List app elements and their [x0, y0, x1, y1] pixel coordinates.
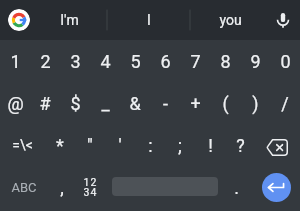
staticText: ABC: [11, 180, 37, 195]
button[interactable]: 6: [150, 40, 180, 82]
staticText: .: [234, 177, 239, 198]
staticText: 2: [40, 51, 51, 72]
button[interactable]: I: [107, 0, 190, 40]
button[interactable]: Backspace: [255, 124, 300, 166]
button[interactable]: ?: [225, 124, 255, 166]
staticText: 9: [250, 51, 261, 72]
button[interactable]: .: [220, 166, 252, 211]
staticText: $: [70, 93, 81, 114]
button[interactable]: Enter: [262, 173, 291, 202]
staticText: #: [39, 93, 51, 114]
button[interactable]: ): [240, 82, 270, 124]
button[interactable]: ': [105, 124, 135, 166]
staticText: 1: [10, 51, 21, 72]
button[interactable]: ,: [48, 166, 76, 211]
button[interactable]: 7: [180, 40, 210, 82]
button[interactable]: !: [195, 124, 225, 166]
staticText: !: [208, 135, 213, 156]
staticText: *: [56, 135, 64, 156]
button[interactable]: 5: [120, 40, 150, 82]
button[interactable]: &: [120, 82, 150, 124]
button[interactable]: 8: [210, 40, 240, 82]
button[interactable]: -: [150, 82, 180, 124]
staticText: 3: [70, 51, 81, 72]
button[interactable]: *: [45, 124, 75, 166]
staticText: (: [222, 93, 229, 114]
staticText: _: [101, 93, 110, 114]
staticText: 34: [83, 186, 98, 198]
button[interactable]: 4: [90, 40, 120, 82]
staticText: 0: [280, 51, 291, 72]
staticText: =\<: [12, 137, 33, 153]
staticText: /: [281, 93, 289, 114]
staticText: 4: [100, 51, 111, 72]
button[interactable]: 1: [0, 40, 30, 82]
button[interactable]: 3: [60, 40, 90, 82]
button[interactable]: Voice input: [272, 9, 294, 31]
button[interactable]: @: [0, 82, 30, 124]
button[interactable]: _: [90, 82, 120, 124]
staticText: -: [163, 93, 168, 114]
button[interactable]: Google: [8, 9, 30, 31]
staticText: ): [252, 93, 259, 114]
staticText: @: [7, 93, 24, 114]
button[interactable]: 2: [30, 40, 60, 82]
button[interactable]: :: [135, 124, 165, 166]
staticText: ?: [236, 135, 245, 156]
staticText: you: [219, 12, 242, 28]
button[interactable]: +: [180, 82, 210, 124]
button[interactable]: 0: [270, 40, 300, 82]
staticText: ": [87, 135, 93, 156]
button[interactable]: /: [270, 82, 300, 124]
button[interactable]: (: [210, 82, 240, 124]
button[interactable]: 9: [240, 40, 270, 82]
button[interactable]: I'm: [32, 0, 107, 40]
staticText: +: [190, 93, 201, 114]
button[interactable]: $: [60, 82, 90, 124]
button[interactable]: =\<: [0, 124, 45, 166]
button[interactable]: ;: [165, 124, 195, 166]
button[interactable]: Space: [106, 166, 220, 211]
button[interactable]: Emoji and symbols: [76, 166, 106, 211]
staticText: ,: [60, 177, 64, 198]
staticText: &: [129, 93, 141, 114]
staticText: ;: [178, 135, 182, 156]
button[interactable]: ABC: [0, 166, 48, 211]
staticText: ': [118, 135, 122, 156]
staticText: 6: [160, 51, 171, 72]
button[interactable]: you: [190, 0, 270, 40]
button[interactable]: #: [30, 82, 60, 124]
button[interactable]: ": [75, 124, 105, 166]
staticText: I: [147, 12, 151, 28]
staticText: 12: [83, 176, 98, 188]
staticText: :: [148, 135, 153, 156]
staticText: 7: [190, 51, 201, 72]
staticText: 8: [220, 51, 231, 72]
staticText: 5: [130, 51, 141, 72]
staticText: I'm: [60, 12, 79, 28]
